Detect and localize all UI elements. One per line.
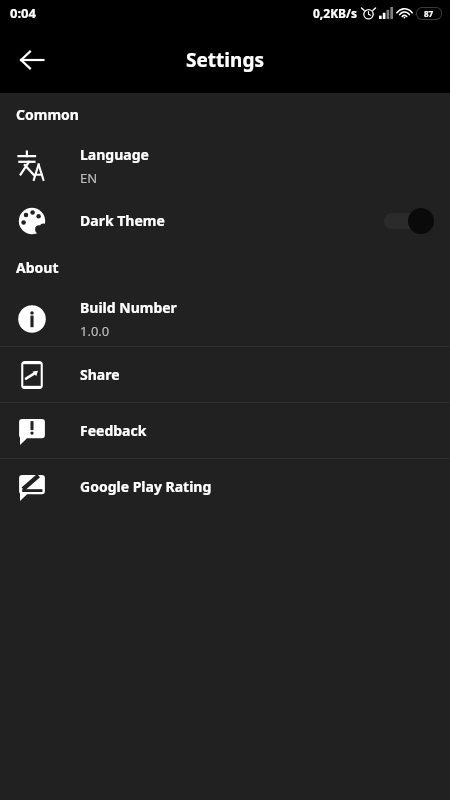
staticText: 87 [424, 8, 434, 19]
staticText: Settings [186, 47, 264, 73]
button[interactable]: Language [0, 138, 450, 193]
staticText: Feedback [80, 421, 147, 440]
staticText: 0:04 [10, 4, 36, 22]
staticText: Common [16, 105, 79, 124]
button[interactable]: Dark Theme [0, 193, 450, 248]
button[interactable]: Feedback [0, 403, 450, 458]
staticText: Google Play Rating [80, 477, 212, 496]
staticText: Build Number [80, 298, 177, 317]
staticText: Language [80, 145, 149, 164]
button[interactable]: Back [8, 36, 56, 84]
staticText: About [16, 258, 59, 277]
staticText: Dark Theme [80, 211, 165, 230]
button[interactable]: Google Play Rating [0, 459, 450, 514]
staticText: Share [80, 365, 120, 384]
staticText: EN [80, 169, 98, 187]
button[interactable]: Share [0, 347, 450, 402]
button[interactable]: Build Number [0, 291, 450, 346]
staticText: 1.0.0 [80, 322, 110, 340]
button[interactable]: Dark Theme toggle [382, 207, 434, 235]
staticText: 0,2KB/s [313, 5, 358, 21]
